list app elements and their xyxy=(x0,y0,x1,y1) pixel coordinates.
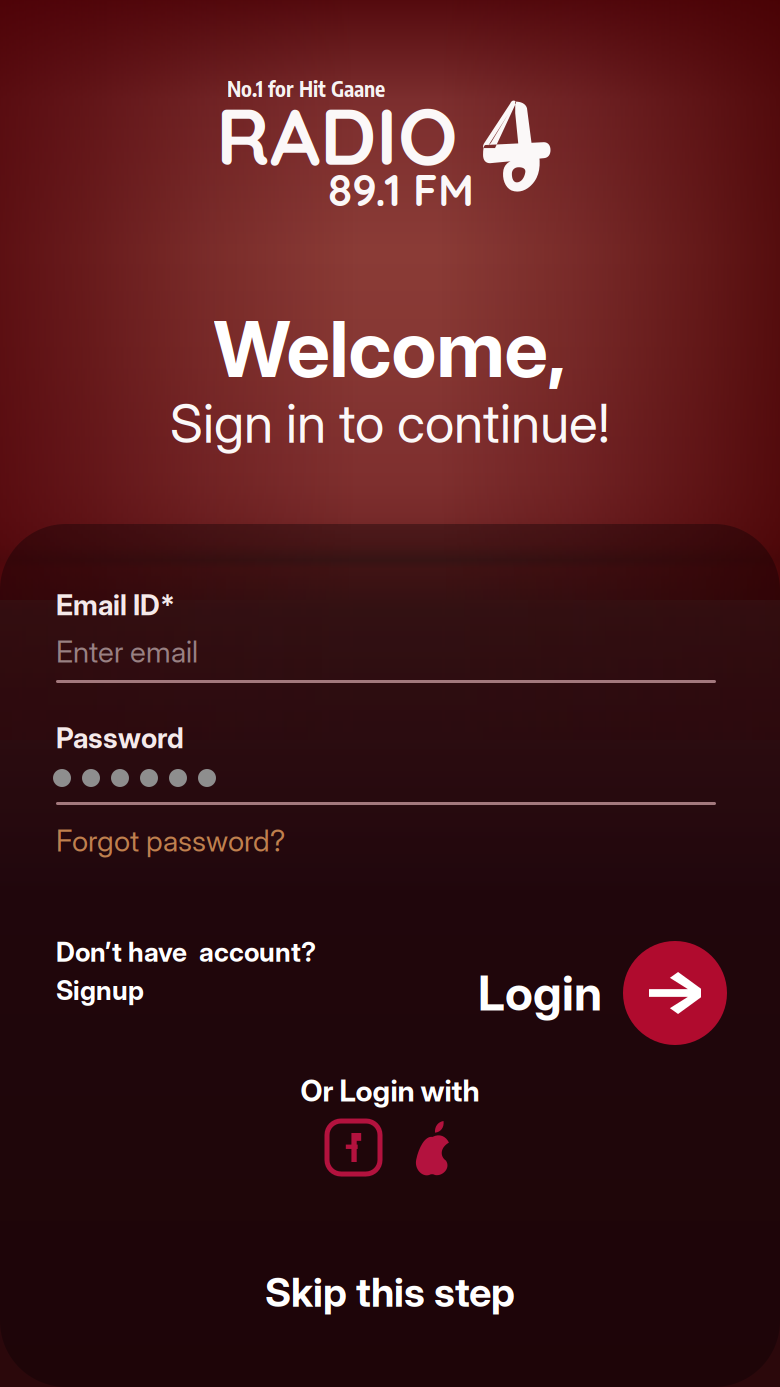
button[interactable]: Don’t have account? xyxy=(56,936,316,1006)
staticText: Password xyxy=(56,721,184,755)
staticText: Enter email xyxy=(56,634,198,669)
staticText: 89.1 FM xyxy=(328,162,474,217)
button[interactable]: Sign in with Apple xyxy=(410,1121,455,1175)
staticText: Login xyxy=(478,964,602,1022)
staticText: Welcome, xyxy=(213,302,566,396)
button[interactable]: Skip this step xyxy=(0,1268,780,1316)
staticText: Don’t have account? xyxy=(56,936,316,968)
staticText: No.1 for Hit Gaane xyxy=(227,75,385,102)
button[interactable]: Forgot password? xyxy=(56,823,285,858)
button[interactable]: Sign in with Facebook xyxy=(327,1121,380,1174)
staticText: Sign in to continue! xyxy=(170,391,610,455)
staticText: Skip this step xyxy=(265,1268,515,1316)
staticText: Or Login with xyxy=(300,1073,479,1108)
staticText: Signup xyxy=(56,974,144,1007)
staticText: Email ID* xyxy=(56,588,175,622)
staticText: Forgot password? xyxy=(56,823,285,858)
staticText: RADIO xyxy=(216,86,458,184)
button[interactable]: Login xyxy=(478,941,727,1045)
